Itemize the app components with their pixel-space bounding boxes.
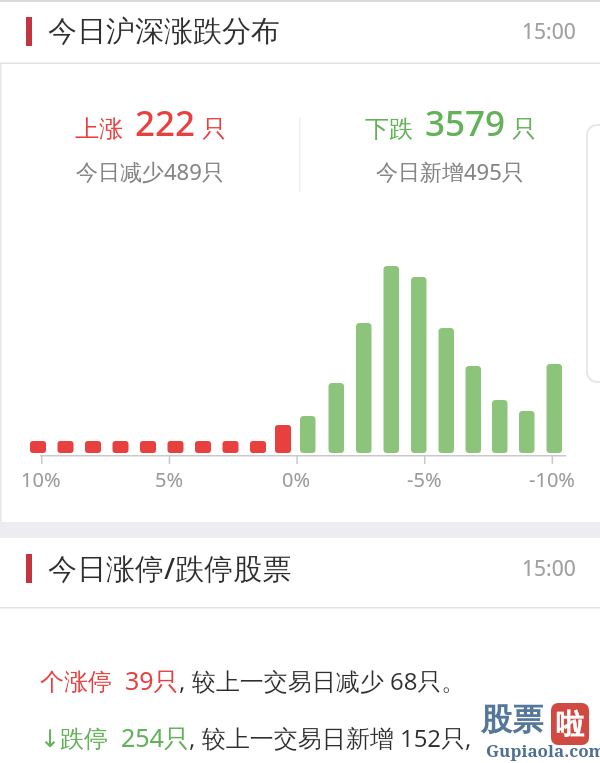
button[interactable]: ↓跌停 — [40, 720, 472, 754]
staticText: 今日沪深涨跌分布 — [48, 13, 280, 50]
staticText: 222 — [135, 99, 196, 147]
button[interactable]: 今日涨停/跌停股票 — [0, 544, 600, 592]
staticText: 15:00 — [522, 17, 576, 46]
staticText: 15:00 — [522, 554, 576, 583]
staticText: 5% — [155, 466, 184, 492]
staticText: 39只 — [125, 663, 179, 697]
staticText: 只 — [512, 114, 536, 144]
staticText: -10% — [529, 466, 575, 492]
staticText: 下跌 — [365, 114, 413, 144]
staticText: , 较上一交易日新增 152只, — [189, 721, 472, 754]
staticText: 254只 — [121, 720, 189, 754]
staticText: -5% — [407, 466, 442, 492]
staticText: 个涨停 — [40, 664, 125, 697]
staticText: 上涨 — [75, 114, 123, 144]
staticText: 股票 — [481, 700, 543, 739]
staticText: ↓跌停 — [40, 721, 121, 754]
staticText: 今日新增495只 — [376, 156, 524, 186]
staticText: 只 — [202, 114, 226, 144]
staticText: , 较上一交易日减少 68只。 — [179, 664, 466, 697]
button[interactable]: 个涨停 — [40, 663, 466, 697]
staticText: 啦 — [556, 707, 584, 742]
button[interactable]: 今日沪深涨跌分布 — [0, 7, 600, 55]
staticText: 10% — [21, 466, 61, 492]
staticText: 今日涨停/跌停股票 — [48, 548, 292, 588]
staticText: 3579 — [425, 99, 506, 147]
staticText: Gupiaola.com — [486, 739, 600, 762]
staticText: 0% — [282, 466, 311, 492]
staticText: 今日减少489只 — [76, 156, 224, 186]
